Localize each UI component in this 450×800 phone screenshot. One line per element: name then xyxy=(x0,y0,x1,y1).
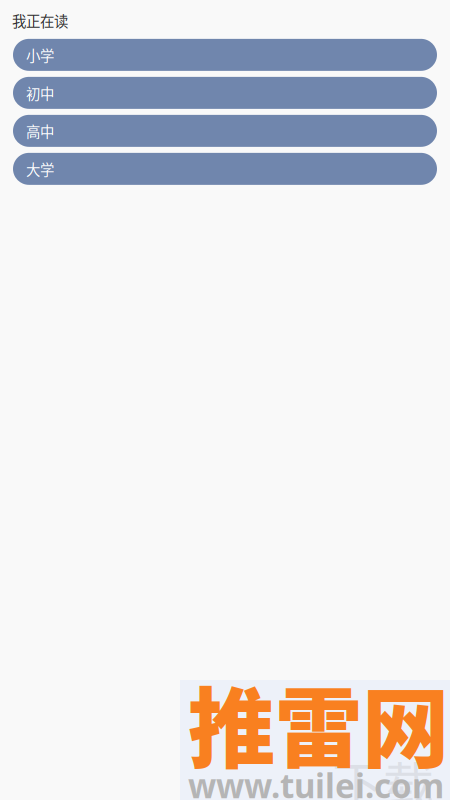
button[interactable]: 高中 xyxy=(13,115,437,147)
staticText: 我正在读 xyxy=(12,10,68,31)
button[interactable]: 小学 xyxy=(13,39,437,71)
button[interactable]: 大学 xyxy=(13,153,437,185)
staticText: www.tuilei.com xyxy=(188,763,444,800)
staticText: 小学 xyxy=(26,44,54,65)
staticText: 高中 xyxy=(26,120,54,141)
staticText: 推雷网 xyxy=(188,660,449,786)
staticText: 初中 xyxy=(26,82,54,103)
button[interactable]: 初中 xyxy=(13,77,437,109)
staticText: 大学 xyxy=(26,158,54,179)
staticText: 下载 xyxy=(332,746,434,800)
